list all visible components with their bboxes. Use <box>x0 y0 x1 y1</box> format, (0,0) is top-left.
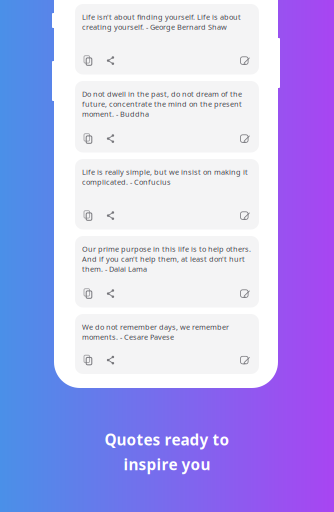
staticText: Quotes ready to <box>104 429 229 450</box>
button[interactable]: Edit note <box>240 289 250 298</box>
button[interactable]: Copy quote <box>84 289 92 298</box>
staticText: Life is really simple, but we insist on … <box>82 167 248 187</box>
button[interactable]: Edit note <box>240 355 250 365</box>
button[interactable]: Edit note <box>240 134 250 143</box>
button[interactable]: Edit note <box>240 211 250 220</box>
staticText: Our prime purpose in this life is to hel… <box>82 244 251 274</box>
staticText: inspire you <box>123 454 210 475</box>
staticText: Do not dwell in the past, do not dream o… <box>82 89 242 119</box>
staticText: Life isn't about finding yourself. Life … <box>82 12 241 32</box>
button[interactable]: Share quote <box>106 134 114 143</box>
button[interactable]: Share quote <box>106 355 114 365</box>
button[interactable]: Share quote <box>106 56 114 65</box>
button[interactable]: Share quote <box>106 289 114 298</box>
button[interactable]: Copy quote <box>84 134 92 143</box>
staticText: We do not remember days, we remember mom… <box>82 322 229 342</box>
button[interactable]: Edit note <box>240 56 250 65</box>
button[interactable]: Copy quote <box>84 211 92 220</box>
button[interactable]: Copy quote <box>84 56 92 65</box>
button[interactable]: Copy quote <box>84 355 92 365</box>
button[interactable]: Share quote <box>106 211 114 220</box>
